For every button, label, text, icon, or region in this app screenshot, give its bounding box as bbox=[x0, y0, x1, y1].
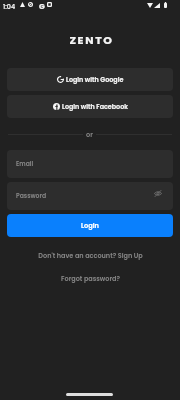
staticText: Login with Facebook bbox=[62, 102, 128, 111]
staticText: or bbox=[86, 130, 93, 139]
staticText: Forgot password? bbox=[61, 274, 120, 283]
staticText: Password bbox=[16, 192, 47, 201]
staticText: 1:04 bbox=[3, 2, 16, 11]
staticText: ZENTO bbox=[69, 32, 114, 47]
button[interactable]: Email bbox=[7, 150, 173, 178]
button[interactable]: Login with Google bbox=[7, 68, 173, 91]
button[interactable]: Forgot password? bbox=[0, 272, 180, 284]
button[interactable]: Login bbox=[7, 214, 173, 237]
button[interactable]: Don't have an account? Sign Up bbox=[0, 249, 180, 261]
staticText: Login bbox=[81, 221, 99, 230]
button[interactable]: Password bbox=[7, 182, 173, 210]
staticText: Login with Google bbox=[66, 75, 124, 84]
staticText: G bbox=[39, 1, 45, 12]
staticText: Email bbox=[16, 160, 34, 169]
staticText: Don't have an account? Sign Up bbox=[38, 251, 143, 260]
button[interactable]: Toggle password visibility bbox=[152, 186, 164, 200]
button[interactable]: Login with Facebook bbox=[7, 95, 173, 118]
